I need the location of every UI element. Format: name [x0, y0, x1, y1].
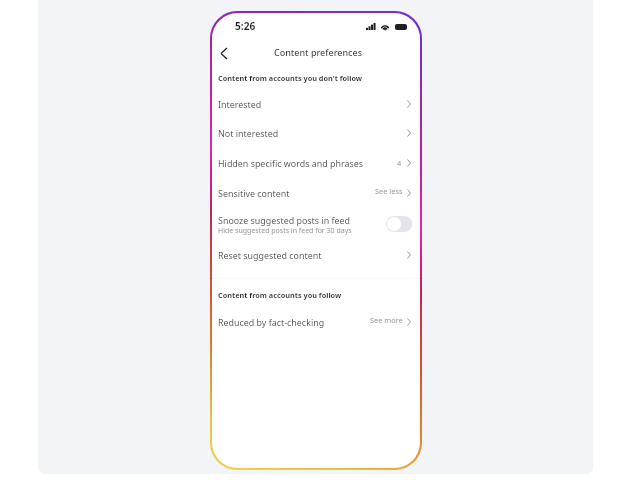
staticText: Not interested: [218, 127, 279, 139]
button[interactable]: Not interested: [212, 118, 420, 148]
button[interactable]: Sensitive content: [212, 178, 420, 208]
staticText: Hide suggested posts in feed for 30 days: [218, 226, 352, 236]
button[interactable]: Snooze suggested posts in feed: [212, 210, 420, 239]
staticText: 4: [397, 158, 402, 168]
button[interactable]: Interested: [212, 89, 420, 119]
staticText: 5:26: [235, 19, 256, 33]
staticText: See less: [375, 186, 403, 196]
staticText: Interested: [218, 98, 262, 110]
staticText: See more: [370, 315, 403, 325]
button[interactable]: Hidden specific words and phrases: [212, 148, 420, 178]
staticText: Reset suggested content: [218, 249, 322, 261]
button[interactable]: Reduced by fact-checking: [212, 307, 420, 337]
staticText: Sensitive content: [218, 187, 290, 199]
staticText: Content from accounts you don't follow: [218, 73, 363, 83]
button[interactable]: Reset suggested content: [212, 240, 420, 270]
staticText: Content from accounts you follow: [218, 290, 342, 300]
staticText: Snooze suggested posts in feed: [218, 214, 351, 226]
button[interactable]: Back: [213, 42, 235, 64]
staticText: Hidden specific words and phrases: [218, 157, 364, 169]
staticText: Content preferences: [274, 46, 363, 58]
staticText: Reduced by fact-checking: [218, 316, 325, 328]
